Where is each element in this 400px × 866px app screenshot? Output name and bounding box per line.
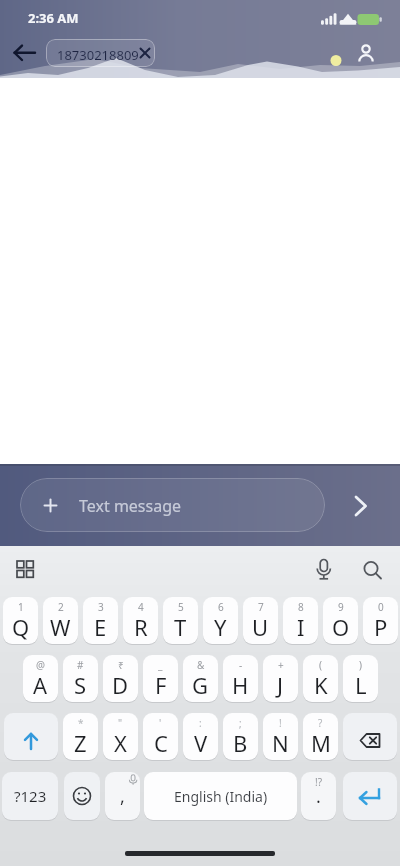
button[interactable] [356, 554, 390, 588]
staticText: J [277, 670, 284, 700]
button[interactable]: 8 [283, 597, 318, 644]
staticText: H [232, 670, 249, 700]
staticText: R [134, 612, 148, 642]
staticText: 2:36 AM [28, 9, 79, 27]
button[interactable]: @ [23, 655, 58, 702]
staticText: O [332, 612, 350, 642]
button[interactable]: 0 [363, 597, 398, 644]
button[interactable] [8, 39, 38, 67]
button[interactable]: 2 [43, 597, 78, 644]
staticText: 6 [218, 600, 224, 614]
button[interactable]: ) [343, 655, 378, 702]
button[interactable]: ( [303, 655, 338, 702]
staticText: Text message [79, 495, 182, 517]
staticText: 4 [138, 600, 144, 614]
button[interactable]: 6 [203, 597, 238, 644]
staticText: ; [239, 716, 242, 730]
staticText: , [120, 784, 125, 809]
button[interactable] [343, 772, 397, 820]
button[interactable]: ! [263, 713, 298, 760]
button[interactable]: : [183, 713, 218, 760]
staticText: M [311, 728, 331, 758]
staticText: " [118, 716, 123, 730]
staticText: Z [74, 728, 87, 758]
staticText: ! [279, 716, 282, 730]
staticText: . [316, 784, 321, 809]
staticText: B [233, 728, 248, 758]
staticText: Y [214, 612, 227, 642]
staticText: 9 [338, 600, 344, 614]
button[interactable]: + [263, 655, 298, 702]
staticText: 18730218809 [57, 46, 139, 64]
staticText: 1 [18, 600, 24, 614]
button[interactable]: , [105, 772, 140, 820]
staticText: * [78, 716, 84, 730]
staticText: _ [158, 658, 163, 672]
button[interactable]: # [63, 655, 98, 702]
button[interactable]: ; [223, 713, 258, 760]
staticText: E [94, 612, 107, 642]
button[interactable]: & [183, 655, 218, 702]
staticText: !? [315, 775, 323, 789]
staticText: ₹ [118, 658, 124, 672]
button[interactable]: !? [301, 772, 336, 820]
staticText: ' [159, 716, 162, 730]
button[interactable]: - [223, 655, 258, 702]
staticText: C [154, 728, 168, 758]
button[interactable]: Text message [20, 478, 325, 532]
staticText: K [314, 670, 328, 700]
staticText: & [197, 658, 205, 672]
staticText: : [199, 716, 202, 730]
staticText: L [355, 670, 367, 700]
staticText: D [112, 670, 129, 700]
staticText: # [77, 658, 84, 672]
staticText: ( [319, 658, 322, 672]
button[interactable]: _ [143, 655, 178, 702]
staticText: Q [12, 612, 30, 642]
button[interactable]: ?123 [2, 772, 58, 820]
staticText: @ [36, 658, 45, 672]
staticText: T [174, 612, 187, 642]
staticText: 8 [298, 600, 304, 614]
button[interactable]: * [63, 713, 98, 760]
button[interactable]: 9 [323, 597, 358, 644]
button[interactable]: 4 [123, 597, 158, 644]
button[interactable]: 1 [3, 597, 38, 644]
staticText: S [74, 670, 87, 700]
button[interactable]: 3 [83, 597, 118, 644]
staticText: 5 [178, 600, 184, 614]
button[interactable] [4, 713, 58, 760]
button[interactable]: 18730218809 [46, 39, 155, 67]
staticText: F [155, 670, 167, 700]
button[interactable]: 7 [243, 597, 278, 644]
staticText: + [278, 658, 284, 672]
button[interactable]: ₹ [103, 655, 138, 702]
button[interactable]: ? [303, 713, 338, 760]
button[interactable] [343, 713, 397, 760]
staticText: A [33, 670, 48, 700]
button[interactable] [343, 491, 373, 521]
button[interactable] [64, 772, 100, 820]
button[interactable] [352, 37, 380, 65]
staticText: G [192, 670, 209, 700]
staticText: U [252, 612, 269, 642]
staticText: ? [318, 716, 323, 730]
staticText: I [297, 612, 305, 642]
staticText: W [50, 612, 71, 642]
staticText: 3 [98, 600, 104, 614]
button[interactable]: 5 [163, 597, 198, 644]
staticText: V [194, 728, 208, 758]
staticText: P [374, 612, 388, 642]
staticText: - [239, 658, 243, 672]
staticText: 0 [378, 600, 384, 614]
staticText: X [114, 728, 127, 758]
staticText: English (India) [174, 787, 268, 806]
staticText: ) [359, 658, 362, 672]
button[interactable] [10, 554, 44, 588]
button[interactable]: English (India) [144, 772, 297, 820]
staticText: 2 [58, 600, 64, 614]
button[interactable]: " [103, 713, 138, 760]
staticText: ?123 [14, 786, 47, 806]
button[interactable]: ' [143, 713, 178, 760]
button[interactable] [308, 554, 342, 588]
